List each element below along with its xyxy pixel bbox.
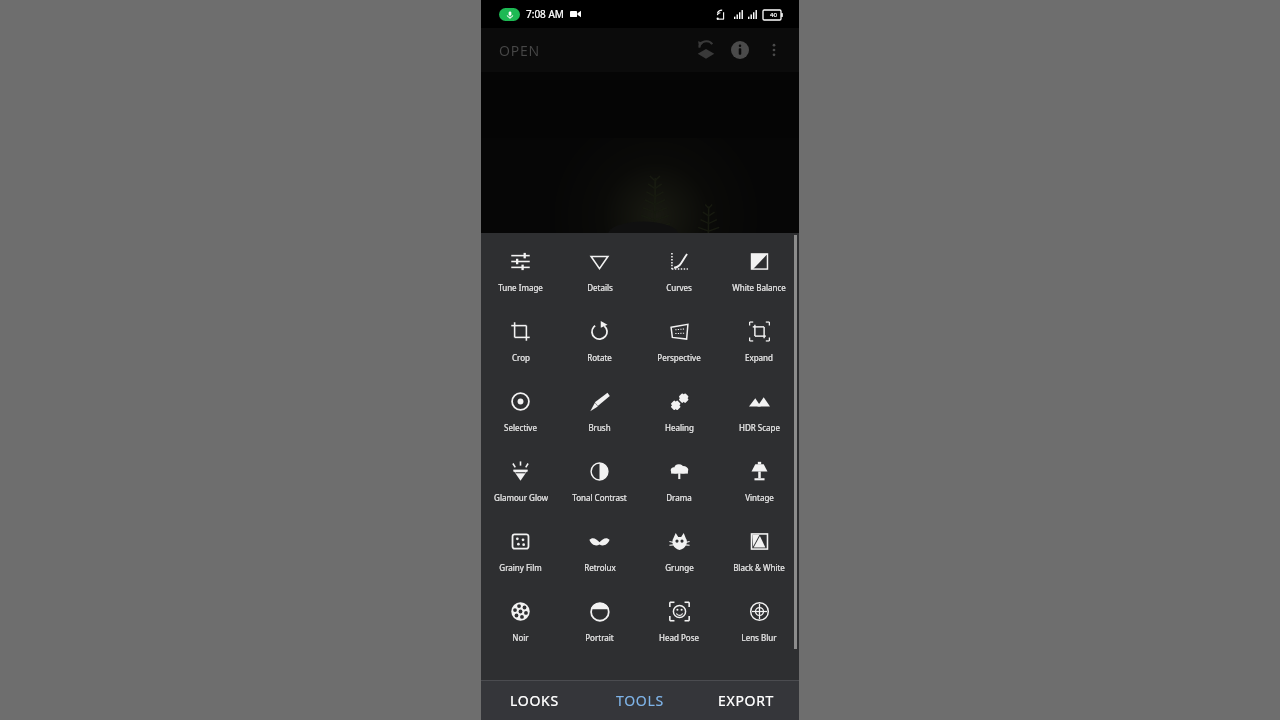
button[interactable]: Selective (481, 382, 560, 452)
button[interactable]: LOOKS (481, 681, 587, 720)
button[interactable]: Details (560, 242, 639, 312)
button[interactable]: Curves (639, 242, 719, 312)
button[interactable]: Perspective (639, 312, 719, 382)
staticText: Crop (512, 352, 530, 363)
staticText: HDR Scape (739, 422, 780, 433)
staticText: Healing (665, 422, 694, 433)
button[interactable]: EXPORT (693, 681, 799, 720)
button[interactable]: HDR Scape (719, 382, 799, 452)
button[interactable]: Brush (560, 382, 639, 452)
button[interactable]: White Balance (719, 242, 799, 312)
staticText: OPEN (499, 41, 541, 60)
staticText: 40 (770, 11, 777, 19)
button[interactable]: Tonal Contrast (560, 452, 639, 522)
button[interactable]: Portrait (560, 592, 639, 662)
button[interactable]: Retrolux (560, 522, 639, 592)
button[interactable]: Grunge (639, 522, 719, 592)
staticText: Selective (504, 422, 537, 433)
button[interactable]: Healing (639, 382, 719, 452)
staticText: White Balance (732, 282, 786, 293)
staticText: Black & White (733, 562, 785, 573)
staticText: Head Pose (659, 632, 699, 643)
button[interactable]: Tune Image (481, 242, 560, 312)
button[interactable]: More options (757, 33, 791, 67)
button[interactable]: Info (723, 33, 757, 67)
staticText: Retrolux (584, 562, 616, 573)
staticText: Rotate (587, 352, 612, 363)
button[interactable]: Noir (481, 592, 560, 662)
staticText: Lens Blur (741, 632, 777, 643)
button[interactable]: Vintage (719, 452, 799, 522)
button[interactable]: Lens Blur (719, 592, 799, 662)
button[interactable]: Rotate (560, 312, 639, 382)
staticText: LOOKS (510, 691, 559, 710)
button[interactable]: Undo stack (689, 33, 723, 67)
staticText: Tonal Contrast (572, 492, 627, 503)
button[interactable]: TOOLS (587, 681, 693, 720)
staticText: Portrait (585, 632, 614, 643)
staticText: Grunge (665, 562, 694, 573)
staticText: Vintage (745, 492, 774, 503)
button[interactable]: Glamour Glow (481, 452, 560, 522)
staticText: Perspective (657, 352, 701, 363)
staticText: Glamour Glow (494, 492, 548, 503)
button[interactable]: Black & White (719, 522, 799, 592)
staticText: Drama (666, 492, 692, 503)
staticText: Brush (588, 422, 611, 433)
button[interactable]: Head Pose (639, 592, 719, 662)
staticText: 7:08 AM (526, 7, 564, 21)
staticText: Tune Image (498, 282, 543, 293)
button[interactable]: OPEN (489, 35, 551, 66)
button[interactable]: Grainy Film (481, 522, 560, 592)
staticText: Expand (745, 352, 773, 363)
staticText: TOOLS (616, 691, 664, 710)
staticText: Grainy Film (499, 562, 542, 573)
button[interactable]: Expand (719, 312, 799, 382)
staticText: Details (587, 282, 613, 293)
button[interactable]: Drama (639, 452, 719, 522)
staticText: Noir (512, 632, 529, 643)
staticText: EXPORT (718, 691, 775, 710)
button[interactable]: Crop (481, 312, 560, 382)
staticText: Curves (666, 282, 692, 293)
